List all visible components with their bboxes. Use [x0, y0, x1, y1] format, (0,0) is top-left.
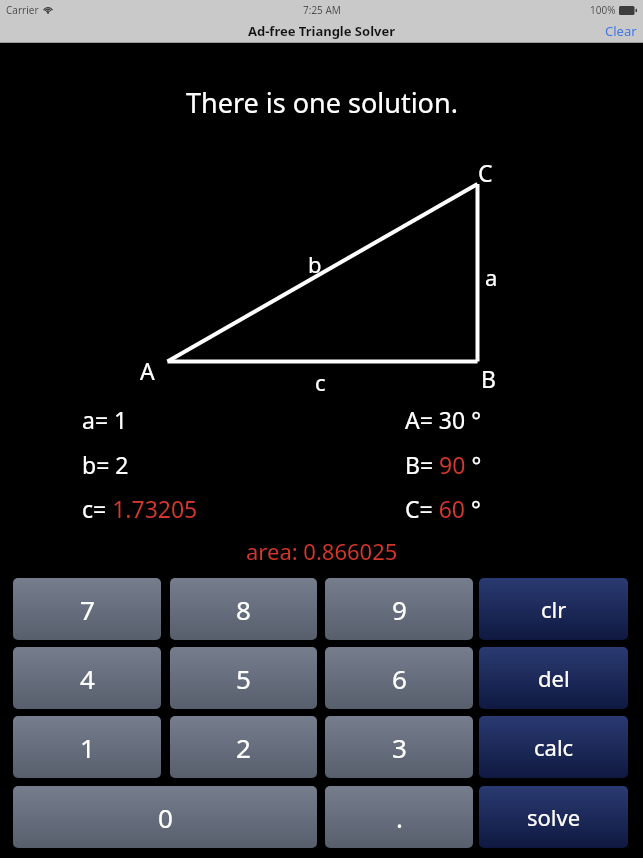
staticText: clr: [541, 594, 567, 624]
staticText: 4: [80, 661, 95, 696]
button[interactable]: Clear: [605, 22, 637, 40]
staticText: C: [478, 157, 493, 188]
button[interactable]: 4: [13, 647, 161, 709]
staticText: calc: [534, 732, 574, 762]
button[interactable]: 6: [325, 647, 473, 709]
button[interactable]: 9: [325, 578, 473, 640]
button[interactable]: del: [479, 647, 628, 709]
staticText: Carrier: [6, 3, 39, 17]
staticText: 0: [158, 800, 173, 835]
button[interactable]: .: [325, 786, 473, 848]
staticText: B= 90 °: [405, 449, 482, 480]
staticText: 9: [392, 592, 407, 627]
staticText: a: [485, 262, 498, 292]
button[interactable]: 2: [170, 716, 317, 778]
staticText: 1: [80, 730, 95, 765]
staticText: A: [140, 355, 155, 386]
staticText: 7:25 AM: [303, 3, 341, 17]
staticText: del: [538, 663, 570, 693]
button[interactable]: 0: [13, 786, 317, 848]
button[interactable]: 3: [325, 716, 473, 778]
button[interactable]: 8: [170, 578, 317, 640]
staticText: .: [396, 800, 403, 835]
staticText: b= 2: [82, 449, 129, 480]
staticText: 6: [392, 661, 407, 696]
staticText: a= 1: [82, 404, 128, 435]
staticText: 3: [392, 730, 407, 765]
button[interactable]: calc: [479, 716, 628, 778]
button[interactable]: 7: [13, 578, 161, 640]
staticText: Clear: [605, 22, 637, 40]
staticText: C= 60 °: [405, 493, 481, 524]
staticText: 8: [236, 592, 251, 627]
button[interactable]: clr: [479, 578, 628, 640]
staticText: c= 1.73205: [82, 493, 198, 524]
staticText: 7: [80, 592, 95, 627]
staticText: B: [481, 363, 496, 394]
staticText: c: [315, 367, 326, 397]
staticText: A= 30 °: [405, 404, 481, 435]
staticText: There is one solution.: [186, 84, 458, 121]
staticText: Ad-free Triangle Solver: [248, 22, 396, 40]
staticText: b: [308, 249, 322, 279]
staticText: 100%: [590, 3, 616, 17]
button[interactable]: 1: [13, 716, 161, 778]
staticText: solve: [527, 802, 581, 832]
staticText: 5: [236, 661, 251, 696]
button[interactable]: solve: [479, 786, 628, 848]
staticText: 2: [236, 730, 251, 765]
button[interactable]: 5: [170, 647, 317, 709]
staticText: area: 0.866025: [246, 536, 398, 566]
